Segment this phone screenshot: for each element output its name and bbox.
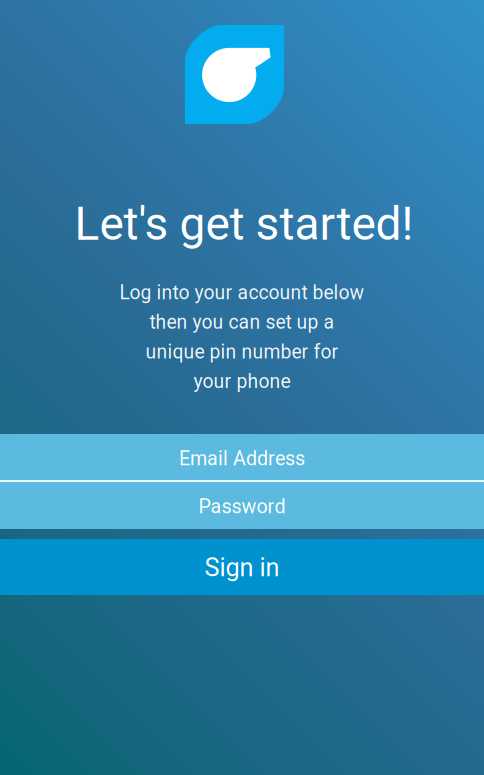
staticText: Password xyxy=(198,495,285,518)
button[interactable]: Sign in xyxy=(0,539,484,595)
staticText: Let's get started! xyxy=(74,197,413,251)
staticText: your phone xyxy=(193,370,290,393)
staticText: Email Address xyxy=(179,447,305,470)
staticText: Sign in xyxy=(204,553,279,582)
button[interactable]: Email Address xyxy=(0,434,484,480)
staticText: then you can set up a xyxy=(149,311,334,333)
staticText: Log into your account below xyxy=(119,281,364,304)
staticText: unique pin number for xyxy=(145,340,338,363)
button[interactable]: Password xyxy=(0,482,484,529)
